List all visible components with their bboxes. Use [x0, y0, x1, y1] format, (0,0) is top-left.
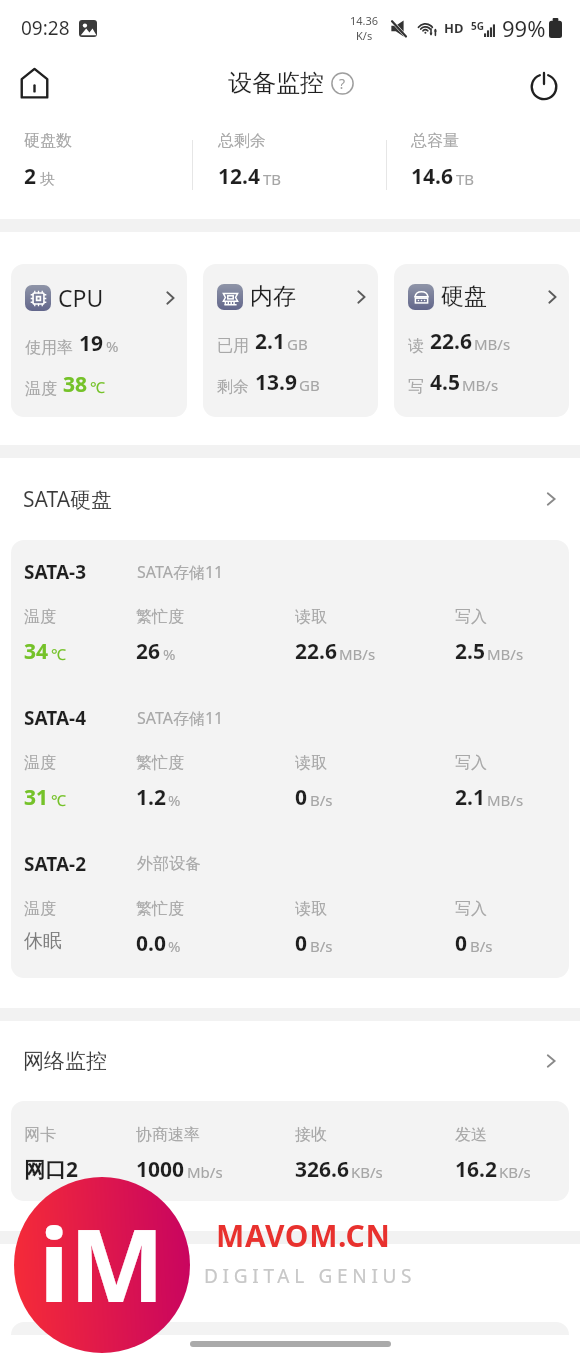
staticText: K/s	[356, 28, 373, 43]
staticText: B/s	[310, 936, 333, 956]
staticText: 硬盘	[441, 282, 487, 311]
staticText: 发送	[455, 1125, 487, 1145]
staticText: 已用	[217, 336, 249, 356]
staticText: 4.5	[430, 368, 460, 397]
staticText: 14.6	[411, 162, 453, 191]
button[interactable]: SATA-3	[11, 540, 569, 686]
staticText: 外部设备	[137, 854, 201, 874]
staticText: 12.4	[218, 162, 260, 191]
button[interactable]: 硬盘	[394, 264, 569, 417]
staticText: 2	[24, 162, 37, 191]
staticText: DIGITAL GENIUS	[204, 1263, 417, 1289]
staticText: 34	[24, 637, 49, 666]
staticText: 繁忙度	[136, 899, 184, 919]
staticText: 13.9	[255, 368, 297, 397]
staticText: 0	[455, 929, 468, 958]
staticText: SATA-3	[24, 559, 87, 585]
staticText: %	[168, 790, 181, 810]
staticText: 设备监控	[228, 68, 324, 98]
staticText: SATA-2	[24, 851, 87, 877]
staticText: KB/s	[499, 1162, 531, 1182]
staticText: 2.1	[455, 783, 485, 812]
staticText: 22.6	[295, 637, 337, 666]
button[interactable]: 内存	[203, 264, 378, 417]
staticText: SATA存储11	[137, 707, 224, 729]
staticText: GB	[287, 334, 308, 354]
staticText: B/s	[470, 936, 493, 956]
staticText: 0	[295, 783, 308, 812]
button[interactable]: Home	[10, 59, 58, 107]
staticText: 读	[408, 336, 424, 356]
button[interactable]: Help	[331, 72, 354, 95]
staticText: 26	[136, 637, 161, 666]
staticText: 1.2	[136, 783, 166, 812]
staticText: 读取	[295, 607, 327, 627]
staticText: CPU	[58, 282, 104, 313]
staticText: 温度	[25, 379, 57, 399]
staticText: 1000	[136, 1155, 185, 1184]
staticText: 读取	[295, 753, 327, 773]
staticText: 09:28	[21, 15, 70, 41]
staticText: 剩余	[217, 377, 249, 397]
staticText: 5G	[471, 19, 484, 33]
staticText: 14.36	[350, 13, 379, 28]
staticText: 网口2	[24, 1155, 79, 1184]
staticText: MB/s	[474, 334, 511, 354]
staticText: MB/s	[487, 790, 524, 810]
staticText: MAVOM.CN	[216, 1215, 391, 1256]
staticText: %	[168, 936, 181, 956]
staticText: 读取	[295, 899, 327, 919]
staticText: MB/s	[487, 644, 524, 664]
staticText: B/s	[310, 790, 333, 810]
staticText: 使用率	[25, 338, 73, 358]
staticText: 总剩余	[218, 131, 266, 151]
button[interactable]: Power	[520, 59, 568, 107]
staticText: ℃	[90, 377, 105, 397]
staticText: TB	[263, 169, 282, 189]
staticText: GB	[299, 375, 320, 395]
staticText: 总容量	[411, 131, 459, 151]
staticText: SATA-4	[24, 705, 87, 731]
staticText: 休眠	[24, 929, 62, 953]
button[interactable]: 网络监控	[0, 1021, 580, 1101]
button[interactable]: CPU	[11, 264, 187, 417]
staticText: 19	[79, 329, 104, 358]
staticText: 协商速率	[136, 1125, 200, 1145]
button[interactable]: 网卡	[11, 1101, 569, 1201]
staticText: 网络监控	[23, 1048, 107, 1074]
staticText: MB/s	[339, 644, 376, 664]
staticText: HD	[444, 19, 464, 37]
staticText: 写	[408, 377, 424, 397]
staticText: %	[106, 336, 119, 356]
staticText: 温度	[24, 607, 56, 627]
staticText: ℃	[51, 644, 66, 664]
staticText: 繁忙度	[136, 753, 184, 773]
staticText: 0.0	[136, 929, 166, 958]
staticText: ℃	[51, 790, 66, 810]
staticText: MB/s	[462, 375, 499, 395]
staticText: 温度	[24, 753, 56, 773]
staticText: 温度	[24, 899, 56, 919]
staticText: Mb/s	[187, 1162, 223, 1182]
button[interactable]: SATA-4	[11, 686, 569, 832]
button[interactable]: SATA硬盘	[0, 458, 580, 540]
staticText: %	[163, 644, 176, 664]
staticText: 块	[40, 170, 55, 189]
staticText: 31	[24, 783, 49, 812]
staticText: 写入	[455, 899, 487, 919]
staticText: iM	[39, 1194, 165, 1332]
staticText: 22.6	[430, 327, 472, 356]
staticText: 写入	[455, 753, 487, 773]
staticText: 硬盘数	[24, 131, 72, 151]
staticText: TB	[456, 169, 475, 189]
staticText: 接收	[295, 1125, 327, 1145]
button[interactable]: SATA-2	[11, 832, 569, 978]
staticText: 写入	[455, 607, 487, 627]
staticText: 网卡	[24, 1125, 56, 1145]
staticText: SATA存储11	[137, 561, 224, 583]
staticText: 16.2	[455, 1155, 497, 1184]
staticText: KB/s	[351, 1162, 383, 1182]
staticText: 0	[295, 929, 308, 958]
staticText: 2.1	[255, 327, 285, 356]
staticText: 内存	[250, 282, 296, 311]
